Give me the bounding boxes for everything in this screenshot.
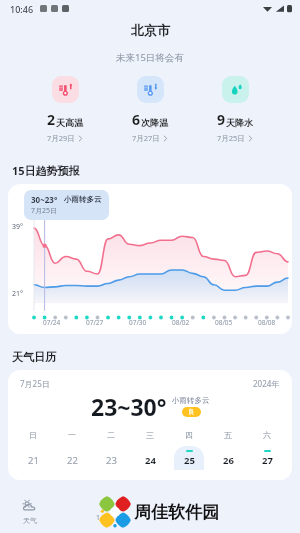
staticText: 一 [68,430,76,440]
staticText: 7月27日 [132,133,160,143]
staticText: 三 [146,430,154,440]
staticText: 25 [184,454,195,467]
staticText: 天气 [23,516,37,525]
button[interactable]: 6 [126,74,174,145]
button[interactable]: 2 [41,74,89,145]
staticText: 21 [28,454,39,467]
staticText: 08/08 [258,318,276,327]
staticText: 15日趋势预报 [12,163,80,178]
button[interactable]: 39° [8,184,292,334]
staticText: 天高温 [56,117,83,128]
staticText: 21° [12,289,24,299]
staticText: 10:46 [10,3,34,15]
staticText: 08/05 [215,318,233,327]
staticText: 07/30 [129,318,147,327]
staticText: 7月25日 [31,206,58,216]
staticText: 26 [223,454,234,467]
staticText: 天降水 [226,117,253,128]
button[interactable]: 25 [174,446,204,470]
staticText: 23~30° [91,391,167,422]
button[interactable]: 9 [211,74,259,145]
staticText: 27 [262,454,273,467]
staticText: 小雨转多云 [172,396,210,405]
staticText: 22 [67,454,78,467]
button[interactable]: 7月25日 [8,370,292,480]
staticText: 天气日历 [12,350,56,364]
staticText: 7月25日 [20,378,50,389]
button[interactable]: 26 [213,446,243,470]
button[interactable]: 30~23° [31,194,102,216]
staticText: 五 [224,430,232,440]
staticText: 日 [29,430,37,440]
staticText: 07/24 [43,318,61,327]
staticText: 7月29日 [47,133,75,143]
button[interactable]: 天气 [22,499,37,525]
staticText: 30~23° [31,194,58,205]
staticText: 未来15日将会有 [116,51,184,64]
staticText: 北京市 [131,22,170,38]
staticText: 39° [12,222,24,232]
staticText: 23 [106,454,117,467]
button[interactable]: 27 [252,446,282,470]
staticText: 9 [217,110,226,129]
staticText: 小雨转多云 [64,195,102,204]
button[interactable]: 21 [18,446,48,470]
staticText: 6 [132,110,141,129]
staticText: 24 [145,454,156,467]
staticText: 1 [96,513,101,523]
staticText: 2 [47,110,56,129]
staticText: 周佳软件园 [134,502,219,523]
staticText: 08/02 [172,318,190,327]
button[interactable]: 23 [96,446,126,470]
button[interactable]: 22 [57,446,87,470]
button[interactable]: 24 [135,446,165,470]
staticText: 2024年 [253,378,280,389]
staticText: 二 [107,430,115,440]
staticText: 07/27 [86,318,104,327]
staticText: 六 [263,430,271,440]
staticText: 四 [185,430,193,440]
staticText: 次降温 [141,117,168,128]
staticText: 良 [188,408,195,416]
staticText: 7月25日 [217,133,245,143]
